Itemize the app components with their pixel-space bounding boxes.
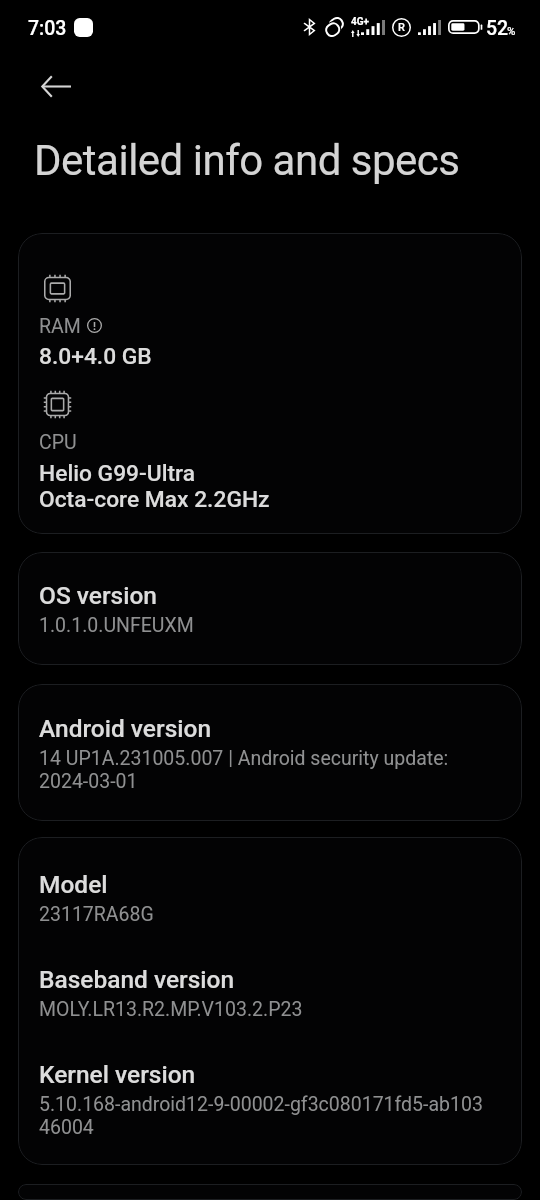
staticText: Android version — [39, 714, 212, 743]
staticText: 5.10.168-android12-9-00002-gf3c080171fd5… — [39, 1093, 483, 1139]
staticText: 1.0.1.0.UNFEUXM — [39, 614, 194, 637]
staticText: 23117RA68G — [39, 903, 154, 926]
staticText: OS version — [39, 581, 157, 610]
button[interactable]: RAM — [18, 233, 522, 534]
button[interactable]: Model — [18, 837, 522, 1165]
staticText: Kernel version — [39, 1060, 196, 1089]
staticText: R — [398, 21, 405, 34]
staticText: Baseband version — [39, 965, 235, 994]
staticText: 52 — [486, 17, 509, 40]
button[interactable]: Back — [27, 57, 85, 115]
staticText: 7:03 — [28, 17, 67, 40]
staticText: 8.0+4.0 GB — [39, 343, 152, 370]
staticText: CPU — [39, 431, 77, 454]
staticText: % — [507, 24, 516, 37]
staticText: Detailed info and specs — [34, 136, 460, 185]
staticText: 4G+ — [351, 16, 370, 28]
staticText: Model — [39, 870, 108, 899]
staticText: RAM — [39, 315, 81, 338]
button[interactable]: OS version — [18, 552, 522, 665]
staticText: Helio G99-Ultra Octa-core Max 2.2GHz — [39, 460, 270, 512]
staticText: MOLY.LR13.R2.MP.V103.2.P23 — [39, 998, 303, 1021]
button[interactable]: Android version — [18, 684, 522, 821]
button[interactable]: Storage — [18, 1184, 522, 1200]
staticText: 14 UP1A.231005.007 | Android security up… — [39, 747, 449, 793]
